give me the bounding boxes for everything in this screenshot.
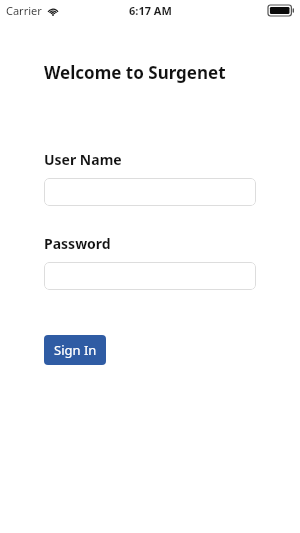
staticText: Password [44, 234, 111, 253]
staticText: Carrier [6, 3, 42, 18]
button[interactable]: Sign In [44, 335, 106, 365]
button[interactable] [44, 262, 256, 290]
staticText: 6:17 AM [129, 3, 172, 18]
staticText: Sign In [54, 341, 97, 359]
button[interactable] [44, 178, 256, 206]
staticText: User Name [44, 150, 122, 169]
staticText: Welcome to Surgenet [44, 61, 226, 84]
